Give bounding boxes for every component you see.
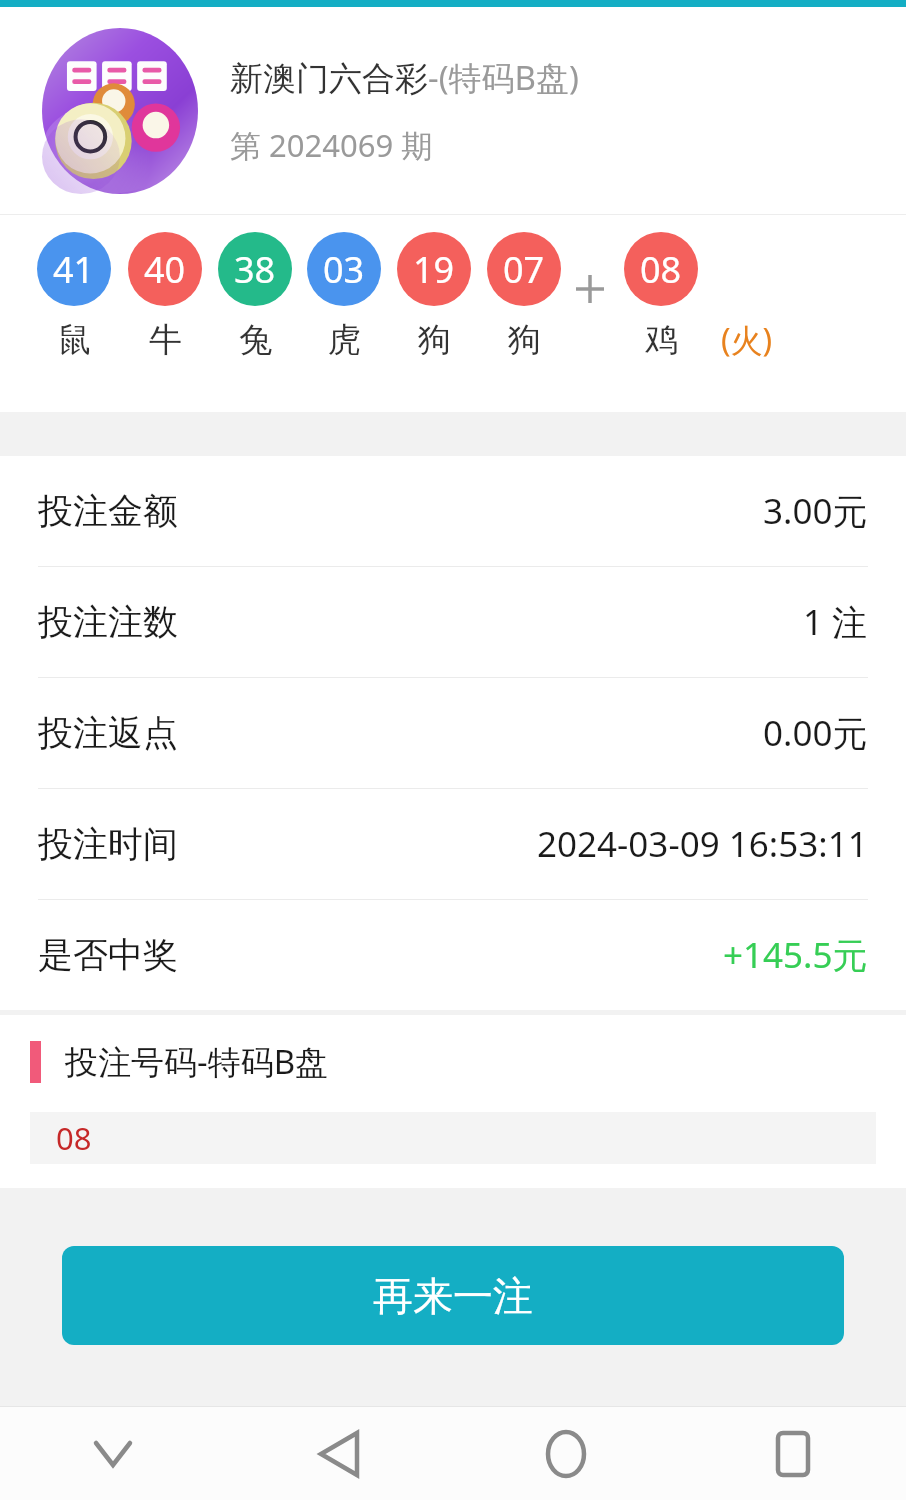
button[interactable]: Home (452, 1407, 679, 1500)
staticText: 38 (234, 245, 276, 294)
staticText: 新澳门六合彩-(特码B盘) (230, 55, 579, 100)
staticText: 0.00元 (763, 709, 868, 757)
button[interactable]: Back (226, 1407, 452, 1500)
staticText: 投注时间 (38, 822, 178, 866)
staticText: 投注返点 (38, 711, 178, 755)
button[interactable]: Recent apps (679, 1407, 906, 1500)
button[interactable]: 投注返点 (0, 678, 906, 788)
staticText: 第 2024069 期 (230, 124, 433, 166)
button[interactable]: 投注注数 (0, 567, 906, 677)
staticText: 投注注数 (38, 600, 178, 644)
staticText: (火) (721, 318, 773, 362)
staticText: 08 (640, 245, 682, 294)
staticText: 投注号码-特码B盘 (65, 1039, 329, 1084)
staticText: 鼠 (58, 319, 91, 361)
staticText: 3.00元 (763, 487, 868, 535)
button[interactable]: 投注金额 (0, 456, 906, 566)
staticText: +145.5元 (723, 931, 868, 979)
staticText: 再来一注 (373, 1271, 533, 1321)
button[interactable]: 投注时间 (0, 789, 906, 899)
staticText: 牛 (149, 319, 182, 361)
staticText: 07 (503, 245, 545, 294)
staticText: 08 (56, 1117, 92, 1159)
staticText: 03 (323, 245, 365, 294)
staticText: 狗 (508, 319, 541, 361)
staticText: 41 (53, 245, 95, 294)
staticText: 狗 (418, 319, 451, 361)
staticText: 1 注 (803, 598, 868, 646)
button[interactable]: 再来一注 (62, 1246, 844, 1345)
staticText: 40 (144, 245, 186, 294)
button[interactable]: 是否中奖 (0, 900, 906, 1010)
staticText: 鸡 (645, 319, 678, 361)
staticText: 兔 (239, 319, 272, 361)
staticText: 是否中奖 (38, 933, 178, 977)
staticText: 投注金额 (38, 489, 178, 533)
button[interactable]: Hide keyboard (0, 1407, 226, 1500)
staticText: 虎 (328, 319, 361, 361)
staticText: 2024-03-09 16:53:11 (537, 820, 868, 868)
staticText: 19 (413, 245, 455, 294)
